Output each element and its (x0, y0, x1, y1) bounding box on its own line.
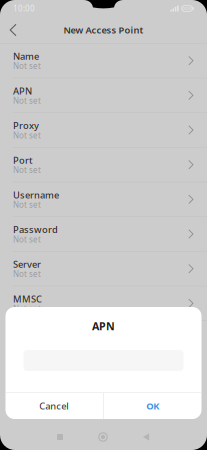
button[interactable]: Password (0, 217, 207, 252)
staticText: Username (13, 189, 59, 201)
button[interactable]: Back (0, 17, 26, 43)
button[interactable]: Cancel (5, 393, 103, 419)
staticText: Proxy (13, 119, 39, 132)
staticText: New Access Point (63, 24, 143, 36)
staticText: Not set (13, 165, 41, 175)
staticText: APN (92, 319, 115, 333)
button[interactable]: Home (82, 427, 124, 447)
staticText: 10:00 (13, 3, 35, 14)
button[interactable]: Back (124, 427, 168, 447)
staticText: Port (13, 154, 33, 166)
staticText: Cancel (39, 400, 69, 412)
staticText: Not set (13, 61, 41, 71)
staticText: Name (13, 50, 39, 62)
button[interactable]: OK (104, 393, 202, 419)
staticText: Not set (13, 95, 41, 106)
staticText: Not set (13, 234, 41, 245)
staticText: Server (13, 258, 41, 270)
staticText: Not set (13, 199, 41, 210)
staticText: APN (13, 85, 32, 97)
button[interactable]: Server (0, 252, 207, 286)
button[interactable]: Proxy (0, 113, 207, 148)
button[interactable]: Recents (38, 427, 82, 447)
staticText: Not set (13, 303, 41, 314)
button[interactable]: Username (0, 182, 207, 217)
staticText: MMSC (13, 293, 42, 305)
staticText: Not set (13, 269, 41, 279)
button[interactable]: Name (0, 44, 207, 78)
button[interactable]: APN (0, 78, 207, 113)
button[interactable]: MMSC (0, 286, 207, 321)
staticText: Not set (13, 130, 41, 141)
button[interactable]: Port (0, 148, 207, 182)
staticText: Password (13, 223, 58, 236)
staticText: OK (146, 400, 159, 412)
